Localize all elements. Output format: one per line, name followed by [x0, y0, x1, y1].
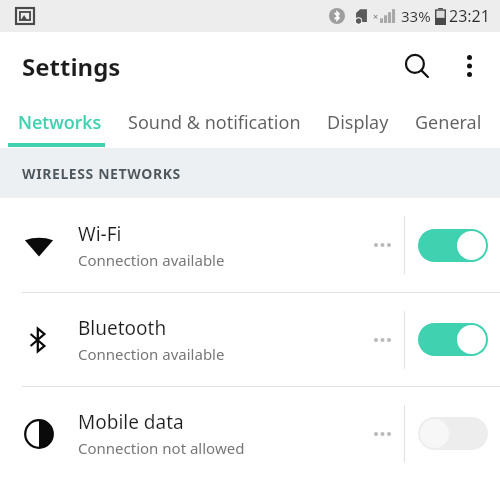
staticText: × [373, 10, 379, 22]
button[interactable]: General [409, 100, 488, 145]
button[interactable]: Networks [8, 100, 112, 145]
button[interactable]: Mobile data [0, 387, 404, 480]
staticText: Settings [22, 50, 121, 83]
button[interactable]: Wi-Fi [0, 198, 404, 292]
button[interactable]: Sound & notification [122, 100, 307, 145]
button[interactable]: Display [321, 100, 395, 145]
staticText: WIRELESS NETWORKS [22, 164, 181, 183]
staticText: 23:21 [449, 5, 490, 27]
button[interactable]: Toggle Bluetooth [405, 293, 500, 386]
button[interactable]: Bluetooth [0, 293, 404, 386]
staticText: Bluetooth [78, 315, 167, 341]
button[interactable]: Search [390, 39, 444, 93]
button[interactable]: Wi-Fi options [360, 198, 404, 292]
button[interactable]: Toggle Mobile data [405, 387, 500, 480]
staticText: 33% [401, 6, 431, 26]
button[interactable]: Bluetooth options [360, 293, 404, 386]
staticText: Sound & notification [128, 110, 301, 135]
staticText: Connection available [78, 250, 225, 270]
staticText: General [415, 110, 482, 135]
staticText: Wi-Fi [78, 221, 122, 247]
staticText: Mobile data [78, 409, 184, 435]
button[interactable]: Mobile data options [360, 387, 404, 480]
staticText: Display [327, 110, 389, 135]
staticText: Connection available [78, 344, 225, 364]
staticText: Connection not allowed [78, 438, 245, 458]
button[interactable]: Toggle Wi-Fi [405, 198, 500, 292]
staticText: Networks [18, 110, 102, 135]
button[interactable]: More options [444, 41, 494, 91]
